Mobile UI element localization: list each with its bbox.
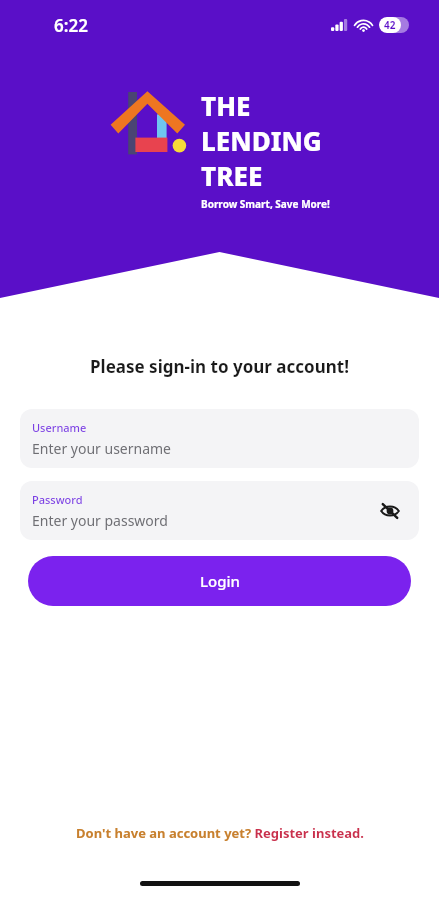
staticText: Don't have an account yet? Register inst… (76, 824, 364, 842)
staticText: Username (32, 420, 87, 435)
staticText: Borrow Smart, Save More! (201, 197, 330, 211)
staticText: Enter your username (32, 439, 172, 458)
button[interactable]: Don't have an account yet? Register inst… (24, 824, 415, 842)
staticText: Please sign-in to your account! (0, 355, 439, 378)
staticText: THE (201, 88, 251, 123)
staticText: Enter your password (32, 511, 168, 530)
staticText: 42 (384, 18, 396, 32)
button[interactable]: Password (20, 481, 419, 540)
button[interactable]: Login (28, 556, 411, 606)
staticText: Password (32, 492, 83, 507)
staticText: Login (200, 571, 240, 591)
button[interactable]: Username (20, 409, 419, 468)
button[interactable]: Show password (375, 496, 405, 526)
staticText: 6:22 (54, 14, 88, 37)
staticText: TREE (201, 158, 263, 193)
staticText: LENDING (201, 123, 322, 158)
